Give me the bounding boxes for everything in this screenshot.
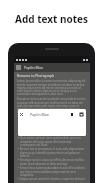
staticText: At vero eos et accusamus et iusto odio d… [20,147,87,157]
button[interactable]: Save [80,113,83,116]
button[interactable]: Close [18,109,86,136]
staticText: Reasons to Photograph [17,74,54,78]
staticText: Nemo enim ipsam voluptatem quia voluptas… [20,115,87,122]
staticText: Neque porro quisquam est qui dolorem ips… [20,123,87,130]
staticText: Add text notes [0,12,103,26]
staticText: Temporibus autem quibusdam et aut offici… [20,166,87,176]
staticText: Poplin Blue [30,112,50,117]
staticText: Quis autem vel eum iure reprehenderit qu… [20,136,87,146]
staticText: Lorem ipsum dolor sit amet consectetur a… [17,79,87,95]
button[interactable]: Poplin Blue [14,63,90,72]
staticText: Excepteur sint occaecat cupidatat non pr… [17,97,87,113]
staticText: Similique sunt in culpa qui officia dese… [20,158,87,165]
staticText: Itaque earum rerum hic tenetur a sapient… [20,177,87,181]
button[interactable]: Close [20,113,23,116]
staticText: Poplin Blue [24,65,44,70]
